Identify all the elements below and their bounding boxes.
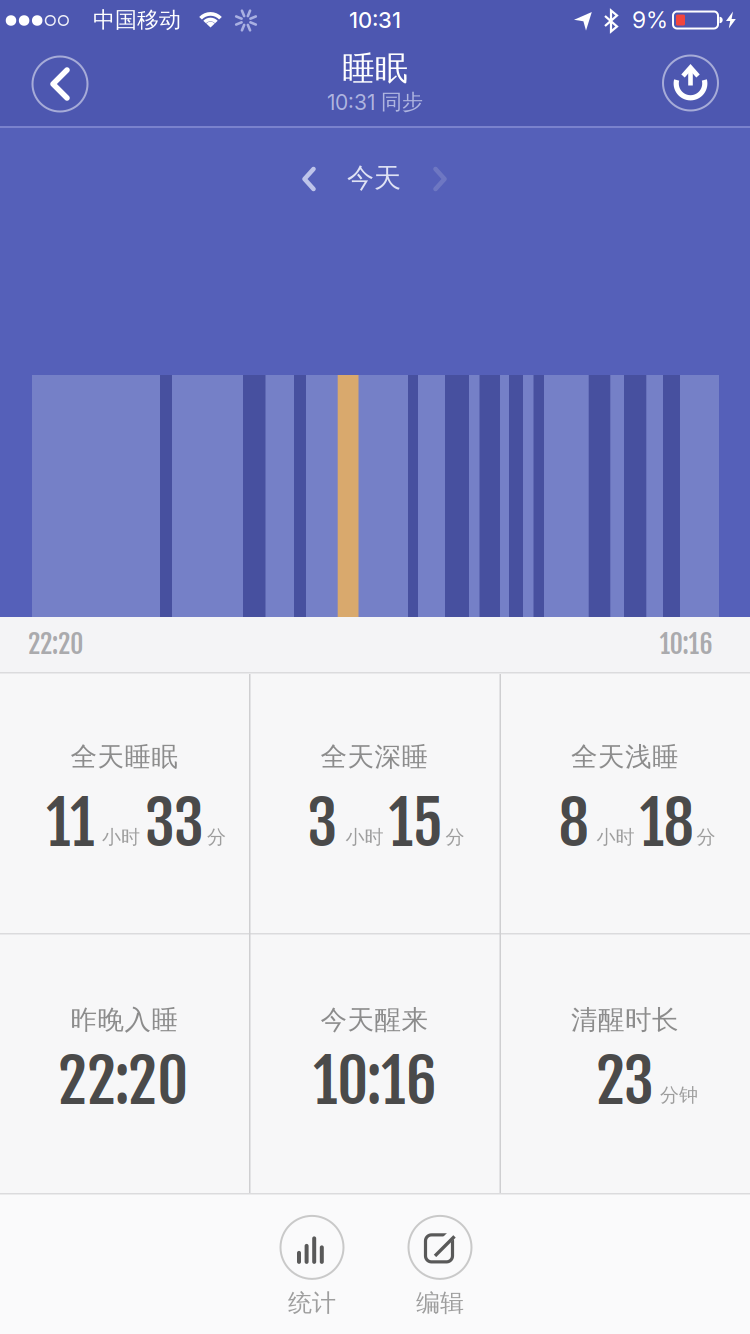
staticText: 10:16 <box>659 628 712 660</box>
staticText: 分 <box>207 825 226 849</box>
staticText: 10:31 <box>349 7 401 33</box>
staticText: 8 <box>558 785 588 861</box>
staticText: 今天醒来 <box>320 1003 428 1037</box>
staticText: 清醒时长 <box>571 1003 679 1037</box>
staticText: 全天深睡 <box>320 740 428 774</box>
button[interactable]: 编辑 <box>408 1216 471 1318</box>
button[interactable]: Next day <box>431 168 449 189</box>
staticText: 33 <box>145 785 204 861</box>
button[interactable]: Previous day <box>300 168 318 189</box>
staticText: 分钟 <box>660 1083 698 1107</box>
button[interactable]: 今天 <box>347 161 401 195</box>
staticText: 今天 <box>347 161 401 195</box>
staticText: 3 <box>307 785 337 861</box>
staticText: 11 <box>46 785 94 861</box>
button[interactable]: Back <box>32 56 87 111</box>
staticText: 10:31 同步 <box>327 89 423 115</box>
staticText: 分 <box>445 825 464 849</box>
staticText: 小时 <box>596 825 634 849</box>
staticText: 中国移动 <box>93 6 181 34</box>
button[interactable]: Share <box>663 55 718 110</box>
staticText: 22:20 <box>58 1043 188 1119</box>
staticText: 统计 <box>288 1288 336 1318</box>
staticText: 9% <box>632 6 668 34</box>
staticText: 睡眠 <box>342 48 408 89</box>
button[interactable]: 统计 <box>280 1216 343 1318</box>
staticText: 分 <box>696 825 715 849</box>
staticText: 15 <box>388 785 442 861</box>
staticText: 小时 <box>345 825 383 849</box>
staticText: 23 <box>596 1043 654 1119</box>
staticText: 10:16 <box>313 1043 437 1119</box>
staticText: 全天睡眠 <box>70 740 178 774</box>
staticText: 18 <box>639 785 693 861</box>
staticText: 编辑 <box>416 1288 464 1318</box>
staticText: 22:20 <box>28 628 84 660</box>
staticText: 昨晚入睡 <box>70 1003 178 1037</box>
staticText: 全天浅睡 <box>571 740 679 774</box>
staticText: 小时 <box>102 825 140 849</box>
